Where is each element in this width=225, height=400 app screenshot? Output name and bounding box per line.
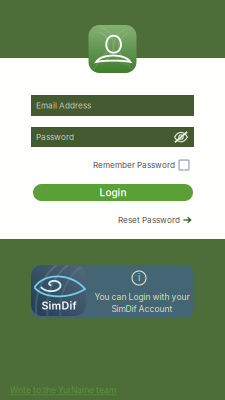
button[interactable]: Email Address [31, 95, 194, 116]
staticText: Login [99, 186, 126, 199]
button[interactable]: Login [33, 184, 193, 201]
staticText: Email Address [36, 101, 91, 110]
staticText: Reset Password [118, 215, 180, 225]
staticText: SimDif Account [111, 304, 172, 314]
staticText: Write to the YurName team [10, 385, 116, 395]
staticText: i [138, 272, 140, 283]
staticText: Password [36, 132, 74, 142]
staticText: SimDif [41, 299, 76, 312]
button[interactable]: Write to the YurName team [10, 385, 116, 395]
staticText: Remember Password [93, 160, 175, 170]
button[interactable]: SimDif [31, 265, 194, 318]
button[interactable]: Remember Password [93, 159, 189, 171]
staticText: You can Login with your [94, 292, 189, 302]
button[interactable]: Password [31, 127, 194, 147]
button[interactable]: Reset Password [118, 215, 192, 225]
